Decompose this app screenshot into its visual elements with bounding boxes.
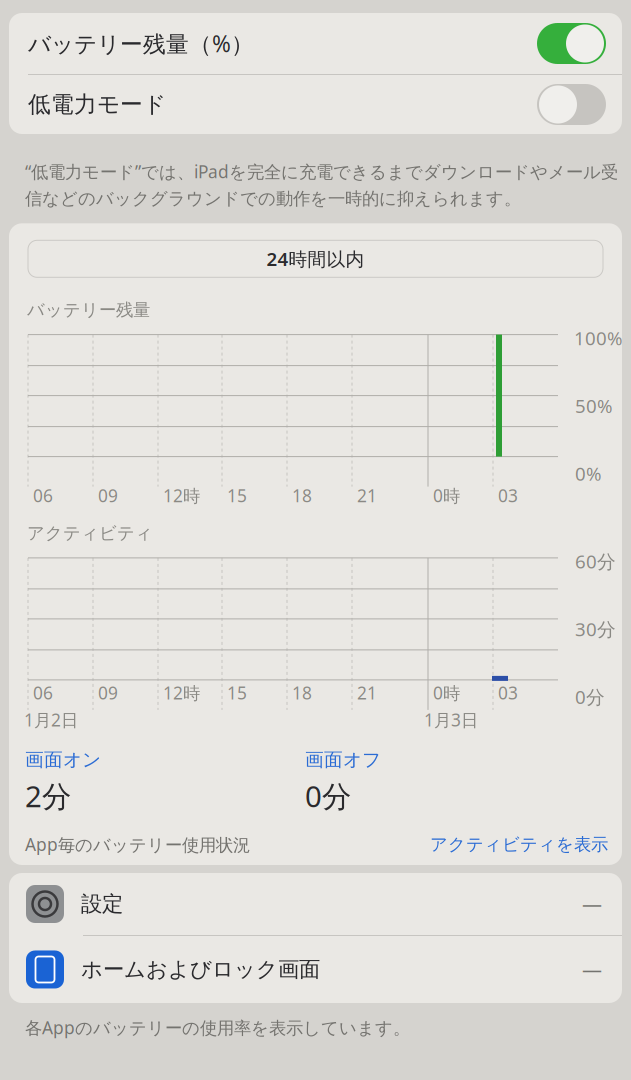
staticText: 0% [575, 461, 602, 486]
staticText: バッテリー残量（%） [28, 28, 254, 58]
button[interactable]: アクティビティを表示 [430, 834, 608, 855]
staticText: 各Appのバッテリーの使用率を表示しています。 [25, 1016, 410, 1039]
staticText: “低電力モード”では、iPadを完全に充電できるまでダウンロードやメール受 [25, 160, 618, 183]
button[interactable]: 24時間以内 [28, 240, 603, 277]
staticText: 03 [498, 681, 518, 704]
staticText: 21 [357, 484, 377, 507]
staticText: 18 [292, 681, 312, 704]
staticText: 0時 [433, 681, 460, 704]
staticText: 03 [498, 484, 518, 507]
staticText: 0分 [305, 776, 351, 815]
staticText: 12時 [163, 681, 200, 704]
staticText: 1月3日 [424, 708, 478, 731]
staticText: 低電力モード [28, 91, 166, 118]
staticText: 60分 [575, 549, 616, 574]
staticText: 画面オフ [305, 748, 381, 771]
button[interactable]: 設定 [9, 873, 622, 935]
staticText: バッテリー残量 [27, 299, 150, 321]
staticText: 信などのバックグラウンドでの動作を一時的に抑えられます。 [25, 188, 521, 209]
staticText: 100% [574, 326, 623, 350]
staticText: アクティビティを表示 [430, 834, 608, 855]
staticText: 06 [33, 484, 53, 507]
staticText: 30分 [575, 617, 616, 641]
staticText: 0分 [575, 684, 605, 709]
staticText: 24時間以内 [266, 246, 364, 271]
staticText: 09 [98, 484, 118, 507]
staticText: 21 [357, 681, 377, 704]
staticText: 15 [227, 484, 247, 507]
staticText: 0時 [433, 484, 460, 507]
staticText: App毎のバッテリー使用状況 [25, 833, 250, 856]
staticText: 画面オン [25, 748, 101, 771]
staticText: 2分 [25, 776, 71, 815]
button[interactable]: 低電力モード [9, 75, 622, 134]
staticText: 09 [98, 681, 118, 704]
staticText: 1月2日 [24, 708, 78, 731]
staticText: 06 [33, 681, 53, 704]
staticText: — [582, 891, 602, 917]
button[interactable]: ホームおよびロック画面 [9, 936, 622, 1003]
button[interactable]: バッテリー残量（%） [9, 13, 622, 74]
staticText: 15 [227, 681, 247, 704]
staticText: 設定 [81, 891, 123, 917]
staticText: — [582, 956, 602, 983]
staticText: ホームおよびロック画面 [81, 956, 320, 983]
staticText: 18 [292, 484, 312, 507]
staticText: 12時 [163, 484, 200, 507]
staticText: 50% [575, 393, 613, 418]
staticText: アクティビティ [27, 523, 153, 544]
